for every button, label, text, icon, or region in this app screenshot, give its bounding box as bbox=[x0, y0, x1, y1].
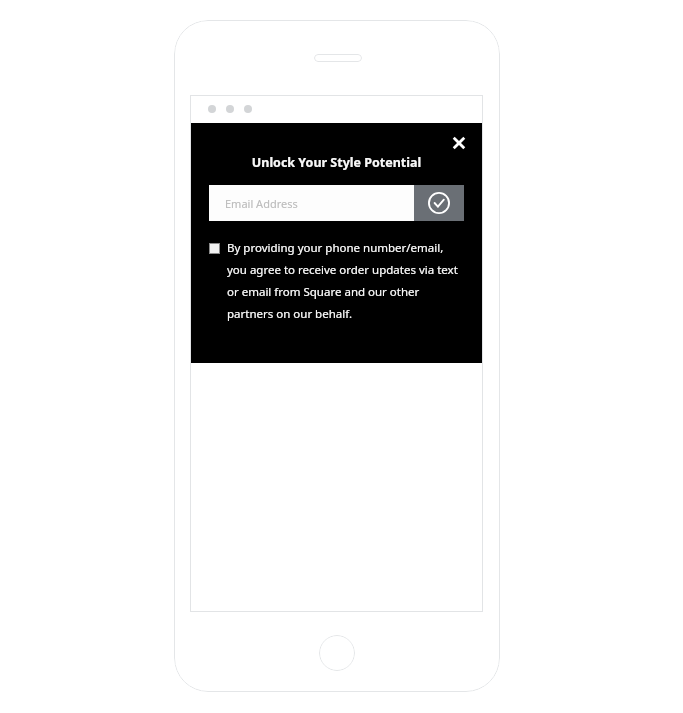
staticText: Unlock Your Style Potential bbox=[209, 154, 464, 171]
button[interactable]: Submit bbox=[414, 185, 464, 221]
staticText: Email Address bbox=[225, 196, 298, 211]
button[interactable]: Home bbox=[319, 635, 355, 671]
button[interactable]: Consent checkbox bbox=[209, 243, 220, 254]
button[interactable]: Email Address bbox=[209, 185, 414, 221]
staticText: By providing your phone number/email, yo… bbox=[227, 240, 464, 321]
button[interactable]: Close bbox=[443, 127, 475, 159]
